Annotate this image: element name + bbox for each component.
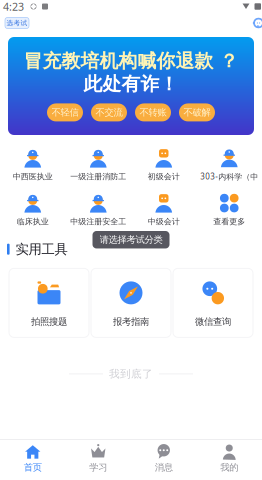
button[interactable]: 学习 [65,444,131,473]
staticText: 303-内科学（中 [200,171,258,182]
button[interactable]: 中级注册安全工 [65,190,131,230]
staticText: 不破解 [183,107,210,118]
staticText: 选考试 [6,19,27,27]
button[interactable]: 303-内科学（中 [196,145,262,185]
staticText: 此处有诈！ [83,72,178,95]
staticText: 报考指南 [113,316,149,327]
button[interactable]: 在线客服 [253,17,262,28]
button[interactable]: 微信查询 [173,268,253,337]
staticText: 不转账 [139,107,166,118]
button[interactable]: 消息 [131,444,196,473]
button[interactable]: 一级注册消防工 [65,145,131,185]
button[interactable]: 临床执业 [0,190,65,230]
button[interactable]: 中级会计 [131,190,196,230]
button[interactable]: 初级会计 [131,145,196,185]
staticText: 实用工具 [16,241,68,257]
staticText: 我的 [220,461,238,473]
button[interactable]: 首页 [0,444,65,473]
staticText: 消息 [155,461,173,473]
staticText: 学习 [89,461,107,473]
staticText: 不交流 [95,107,122,118]
staticText: 拍照搜题 [31,316,67,327]
button[interactable]: 选考试 [5,17,29,28]
button[interactable]: 报考指南 [91,268,171,337]
staticText: 临床执业 [17,217,49,226]
staticText: 中级注册安全工 [70,217,126,226]
button[interactable]: 查看更多 [196,190,262,230]
staticText: 首页 [24,461,42,473]
button[interactable]: 中西医执业 [0,145,65,185]
staticText: 查看更多 [213,217,245,226]
staticText: 微信查询 [195,316,231,327]
staticText: 一级注册消防工 [70,172,126,181]
staticText: 4:23 [3,0,24,14]
button[interactable]: 我的 [196,444,262,473]
staticText: 中级会计 [148,217,180,226]
staticText: 我到底了 [109,367,153,380]
staticText: 初级会计 [148,172,180,181]
button[interactable]: 拍照搜题 [9,268,89,337]
staticText: 中西医执业 [13,172,53,181]
staticText: 冒充教培机构喊你退款 ？ [23,50,238,72]
staticText: 不轻信 [51,107,78,118]
staticText: 请选择考试分类 [99,234,162,245]
